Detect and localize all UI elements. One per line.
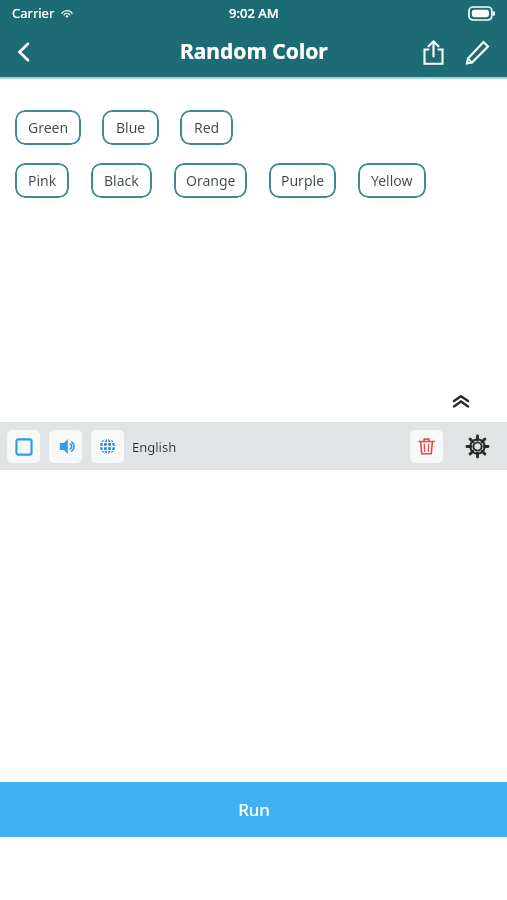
staticText: Purple bbox=[281, 171, 325, 190]
button[interactable]: Language bbox=[91, 430, 124, 463]
staticText: Green bbox=[28, 118, 69, 137]
button[interactable]: Sound bbox=[49, 430, 82, 463]
staticText: Pink bbox=[28, 171, 57, 190]
button[interactable]: Green bbox=[15, 110, 81, 145]
staticText: Red bbox=[194, 118, 220, 137]
staticText: Black bbox=[104, 171, 139, 190]
button[interactable]: Back bbox=[0, 28, 48, 76]
button[interactable]: Expand bbox=[446, 387, 476, 417]
button[interactable]: Red bbox=[180, 110, 233, 145]
staticText: Carrier bbox=[12, 4, 55, 22]
button[interactable]: Run bbox=[0, 782, 507, 837]
button[interactable]: Blue bbox=[102, 110, 159, 145]
button[interactable]: Share bbox=[411, 30, 455, 74]
button[interactable]: Black bbox=[91, 163, 152, 198]
button[interactable]: Purple bbox=[269, 163, 336, 198]
button[interactable]: Edit bbox=[455, 30, 499, 74]
staticText: Run bbox=[238, 798, 270, 821]
button[interactable]: Yellow bbox=[358, 163, 426, 198]
button[interactable]: English bbox=[132, 438, 177, 456]
staticText: 9:02 AM bbox=[229, 4, 279, 22]
button[interactable]: Settings bbox=[459, 428, 495, 464]
button[interactable]: Orange bbox=[174, 163, 247, 198]
staticText: Yellow bbox=[371, 171, 413, 190]
button[interactable]: Stop bbox=[7, 430, 40, 463]
staticText: Random Color bbox=[180, 37, 328, 66]
staticText: Orange bbox=[186, 171, 236, 190]
staticText: Blue bbox=[116, 118, 146, 137]
button[interactable]: Delete bbox=[410, 430, 443, 463]
button[interactable]: Pink bbox=[15, 163, 69, 198]
